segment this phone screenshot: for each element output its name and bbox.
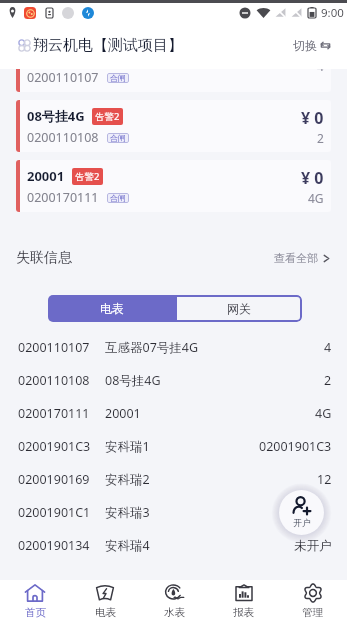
staticText: 管理 [302,606,323,619]
staticText: 0200110107 [27,69,99,86]
button[interactable]: 电表 [70,580,140,623]
staticText: 告警2 [75,170,100,183]
staticText: 安科瑞1 [105,438,150,455]
staticText: 合闸 [110,133,126,143]
staticText: 4 [324,339,332,356]
staticText: 失联信息 [16,249,72,267]
button[interactable]: 02001901C3 [0,430,347,463]
button[interactable]: 报表 [209,580,278,623]
staticText: 告警2 [95,110,120,123]
staticText: 0200110108 [27,129,99,146]
staticText: 查看全部 [274,251,318,265]
staticText: 网关 [227,301,251,316]
button[interactable]: 查看全部 [274,251,331,265]
staticText: 0200170111 [27,189,99,206]
button[interactable]: 0200190134 [0,529,347,562]
staticText: 合闸 [110,193,126,203]
staticText: 02001901C1 [18,504,91,521]
staticText: 0200190134 [18,537,90,554]
button[interactable]: 08号挂4G [16,100,331,152]
staticText: 9:00 [321,5,344,21]
staticText: 08号挂4G [27,107,85,125]
staticText: 首页 [25,606,46,619]
button[interactable]: 0200110108 [0,364,347,397]
button[interactable]: 水表 [140,580,209,623]
staticText: 02001901C3 [259,438,332,455]
staticText: 0200110107 [18,339,90,356]
staticText: 开户 [293,517,311,528]
staticText: 安科瑞3 [105,504,150,521]
staticText: 安科瑞2 [105,471,150,488]
staticText: 翔云机电【测试项目】 [33,36,183,55]
staticText: 水表 [164,606,185,619]
button[interactable]: 首页 [0,580,70,623]
staticText: 报表 [233,606,254,619]
button[interactable]: 电表 [48,295,175,322]
staticText: 互感器07号挂4G [105,339,199,356]
staticText: 4G [308,190,324,206]
staticText: 切换 [293,38,317,53]
button[interactable]: 0200190169 [0,463,347,496]
staticText: 4 [317,69,324,74]
button[interactable]: 管理 [278,580,347,623]
button[interactable]: 20001 [16,160,331,212]
staticText: 安科瑞4 [105,537,150,554]
staticText: 电表 [100,301,124,316]
staticText: ¥ 0 [301,107,324,129]
staticText: 0200190169 [18,471,90,488]
staticText: 08号挂4G [105,372,161,389]
button[interactable]: 网关 [175,295,302,322]
button[interactable]: 0200110107 [0,331,347,364]
staticText: 0200110108 [18,372,90,389]
button[interactable]: 切换 [293,22,331,69]
staticText: 4G [315,405,332,422]
button[interactable]: 开户 [279,490,324,535]
staticText: 2 [324,372,332,389]
staticText: ¥ 0 [301,167,324,189]
staticText: 未开户 [294,538,332,554]
staticText: 合闸 [110,73,126,83]
staticText: 电表 [95,606,116,619]
button[interactable]: 互感器07号挂4G [16,69,331,92]
button[interactable]: 0200170111 [0,397,347,430]
staticText: 2 [317,130,324,146]
button[interactable]: 02001901C1 [0,496,347,529]
staticText: 12 [317,471,332,488]
staticText: 0200170111 [18,405,90,422]
staticText: 20001 [27,167,65,185]
staticText: 02001901C3 [18,438,91,455]
staticText: 20001 [105,405,141,422]
